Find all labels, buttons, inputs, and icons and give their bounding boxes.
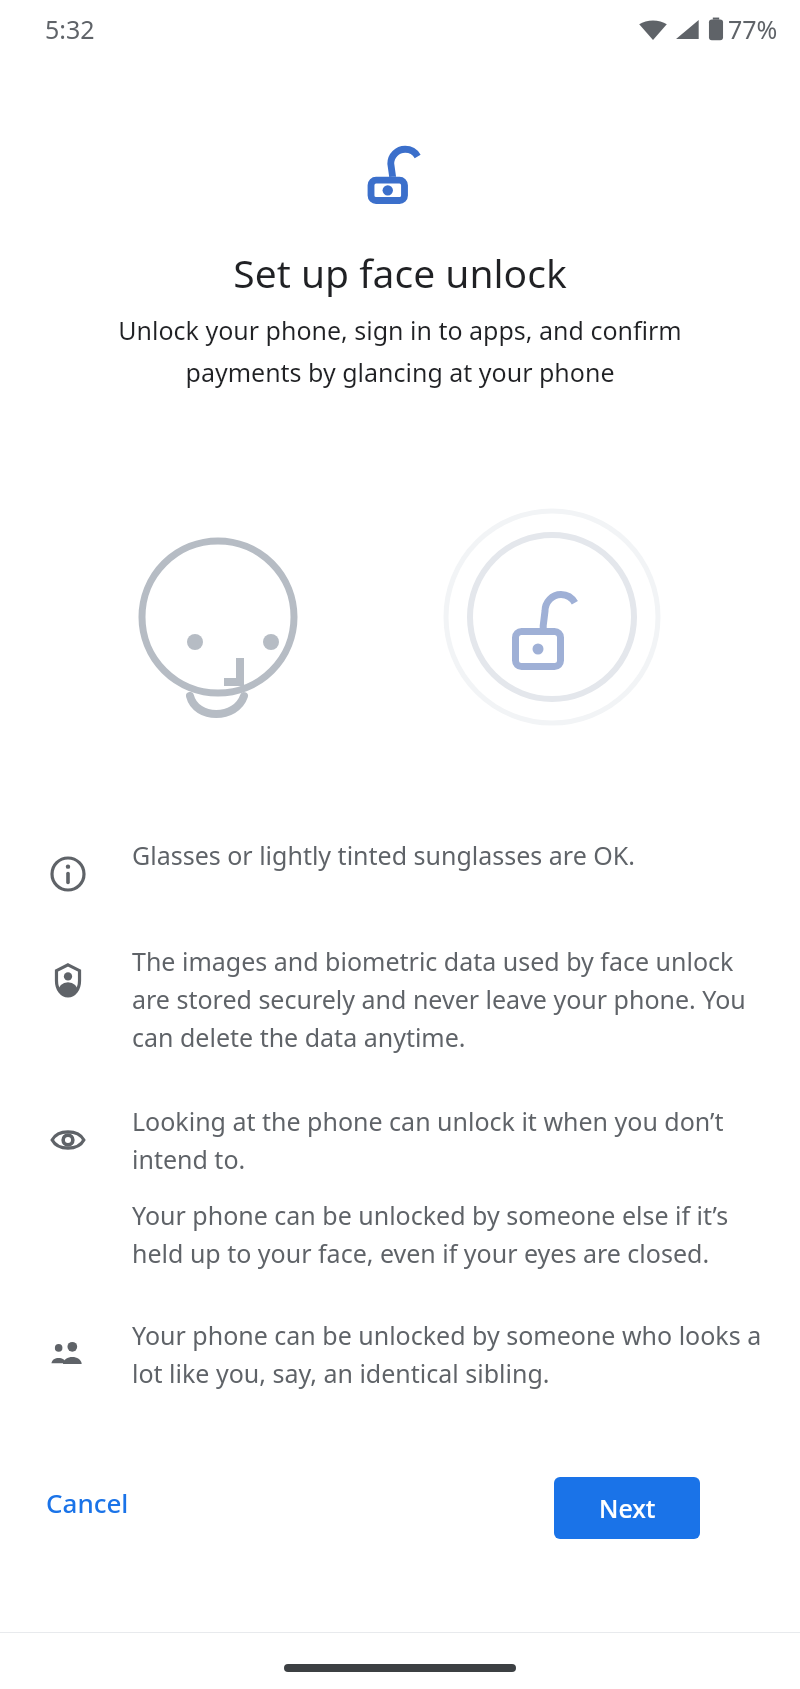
button[interactable]: Cancel — [24, 1471, 151, 1534]
staticText: 77% — [728, 12, 778, 46]
staticText: Looking at the phone can unlock it when … — [132, 1104, 764, 1176]
button[interactable]: Next — [554, 1477, 700, 1539]
staticText: Unlock your phone, sign in to apps, and … — [40, 313, 760, 389]
staticText: Your phone can be unlocked by someone wh… — [132, 1318, 764, 1390]
staticText: The images and biometric data used by fa… — [132, 944, 764, 1054]
staticText: Set up face unlock — [233, 246, 567, 299]
staticText: Cancel — [46, 1485, 129, 1520]
staticText: Next — [599, 1491, 656, 1525]
staticText: 5:32 — [45, 12, 95, 46]
staticText: Your phone can be unlocked by someone el… — [132, 1198, 764, 1270]
staticText: Glasses or lightly tinted sunglasses are… — [132, 838, 635, 872]
